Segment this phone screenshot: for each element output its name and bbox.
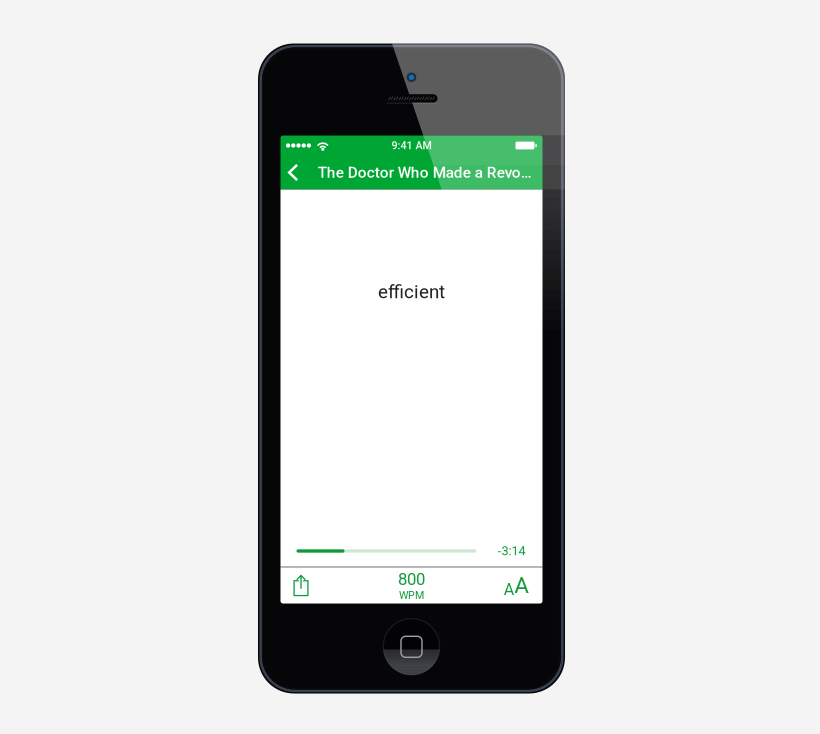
button[interactable]: Pause reading: [280, 189, 542, 519]
staticText: A: [514, 572, 529, 599]
staticText: efficient: [378, 281, 445, 303]
staticText: The Doctor Who Made a Revol…: [318, 163, 534, 181]
staticText: -3:14: [497, 544, 525, 558]
staticText: 800: [398, 569, 425, 589]
staticText: 9:41 AM: [391, 139, 431, 152]
button[interactable]: Text size: [498, 567, 534, 603]
button[interactable]: Share: [283, 567, 319, 603]
staticText: A: [504, 580, 514, 599]
button[interactable]: 800: [379, 567, 443, 603]
staticText: WPM: [399, 589, 424, 601]
button[interactable]: Back: [280, 155, 318, 189]
